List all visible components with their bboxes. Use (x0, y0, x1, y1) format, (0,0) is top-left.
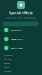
staticText: Add effects (10, 28, 21, 32)
staticText: Archive (4, 69, 11, 73)
staticText: Trending (4, 53, 12, 57)
staticText: Make every shot unforgettable (6, 16, 36, 19)
staticText: Remix video (10, 46, 22, 50)
staticText: Recent (4, 61, 10, 65)
staticText: Change style (10, 37, 22, 41)
staticText: For you (4, 57, 11, 61)
staticText: Saved (4, 65, 9, 69)
staticText: Special effects (9, 11, 33, 15)
